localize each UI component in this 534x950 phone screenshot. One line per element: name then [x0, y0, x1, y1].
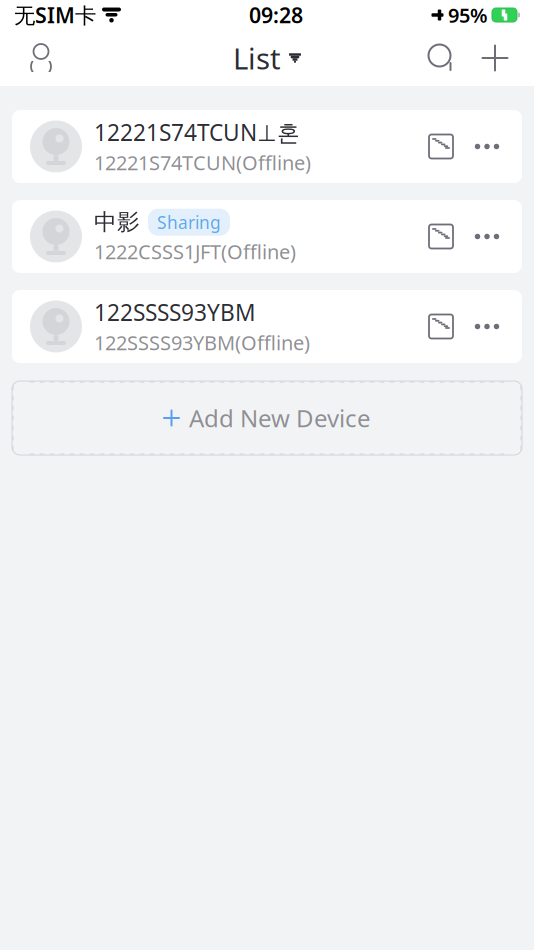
- staticText: 无SIM卡: [14, 1, 96, 29]
- staticText: List: [233, 38, 281, 77]
- staticText: 12221S74TCUN(Offline): [94, 149, 311, 176]
- button[interactable]: 12221S74TCUN⊥혼: [12, 110, 522, 183]
- button[interactable]: Edit 122SSSS93YBM: [418, 301, 464, 351]
- button[interactable]: Add New Device: [12, 381, 522, 455]
- button[interactable]: Add: [468, 30, 522, 86]
- button[interactable]: More options for 122SSSS93YBM: [464, 301, 510, 351]
- staticText: 95%: [448, 2, 488, 28]
- staticText: 1222CSSS1JFT(Offline): [94, 238, 296, 265]
- staticText: Add New Device: [189, 402, 371, 434]
- button[interactable]: Edit 12221S74TCUN⊥혼: [418, 121, 464, 171]
- button[interactable]: Edit 中影: [418, 211, 464, 261]
- button[interactable]: More options for 中影: [464, 211, 510, 261]
- staticText: Sharing: [157, 211, 221, 234]
- button[interactable]: Account: [12, 30, 70, 86]
- button[interactable]: 122SSSS93YBM: [12, 290, 522, 363]
- button[interactable]: 中影: [12, 200, 522, 273]
- button[interactable]: Search: [416, 30, 468, 86]
- staticText: 中影: [94, 208, 140, 236]
- button[interactable]: List: [223, 36, 311, 80]
- button[interactable]: More options for 12221S74TCUN⊥혼: [464, 121, 510, 171]
- staticText: 122SSSS93YBM: [94, 297, 256, 327]
- staticText: 122SSSS93YBM(Offline): [94, 329, 310, 356]
- staticText: 12221S74TCUN⊥혼: [94, 117, 300, 147]
- staticText: 09:28: [249, 1, 303, 29]
